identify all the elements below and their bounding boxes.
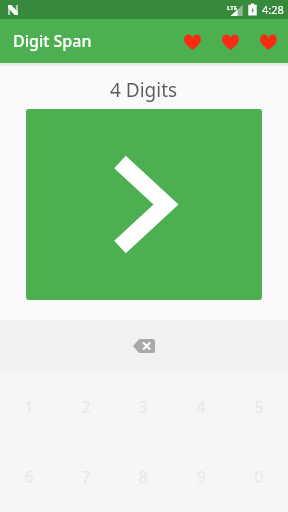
staticText: 1 — [24, 396, 34, 418]
staticText: 7 — [81, 466, 91, 488]
staticText: 8 — [138, 466, 148, 488]
staticText: 3 — [138, 396, 148, 418]
button[interactable]: Life — [259, 31, 278, 53]
button[interactable]: Next — [26, 109, 262, 300]
staticText: 2 — [81, 396, 91, 418]
button[interactable]: Life — [183, 31, 202, 53]
staticText: 9 — [196, 466, 206, 488]
button[interactable]: Backspace — [130, 336, 158, 356]
button[interactable]: Life — [221, 31, 240, 53]
staticText: 4 Digits — [110, 77, 178, 103]
staticText: LTE — [227, 4, 238, 12]
staticText: 6 — [24, 466, 34, 488]
staticText: Digit Span — [13, 30, 92, 52]
staticText: 4:28 — [262, 2, 284, 17]
staticText: 5 — [254, 396, 264, 418]
staticText: 0 — [254, 466, 264, 488]
staticText: 4 — [196, 396, 206, 418]
